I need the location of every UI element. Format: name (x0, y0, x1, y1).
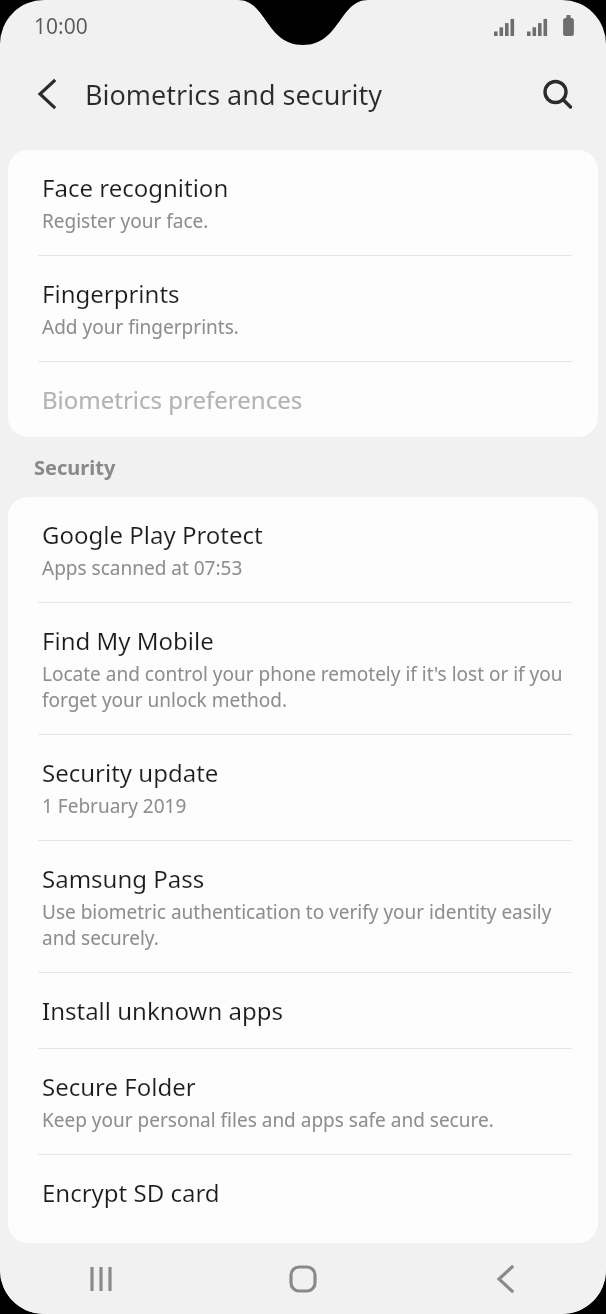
staticText: Samsung Pass (42, 862, 205, 895)
staticText: Secure Folder (42, 1070, 196, 1103)
button[interactable]: Encrypt SD card (8, 1155, 598, 1230)
staticText: Use biometric authentication to verify y… (42, 899, 572, 951)
button[interactable]: Samsung Pass (8, 841, 598, 973)
button[interactable]: Face recognition (8, 150, 598, 256)
staticText: 10:00 (34, 12, 88, 41)
button[interactable]: Find My Mobile (8, 603, 598, 735)
staticText: Install unknown apps (42, 994, 283, 1027)
staticText: Google Play Protect (42, 518, 263, 551)
button[interactable]: Google Play Protect (8, 497, 598, 603)
staticText: Security update (42, 756, 219, 789)
staticText: Security (34, 454, 116, 481)
staticText: Fingerprints (42, 277, 180, 310)
staticText: Encrypt SD card (42, 1176, 220, 1209)
staticText: Register your face. (42, 208, 209, 234)
staticText: Biometrics and security (85, 76, 382, 113)
staticText: Locate and control your phone remotely i… (42, 661, 572, 713)
button[interactable]: Back (404, 1243, 606, 1314)
staticText: Keep your personal files and apps safe a… (42, 1107, 494, 1133)
staticText: Find My Mobile (42, 624, 214, 657)
button[interactable]: Security update (8, 735, 598, 841)
button[interactable]: Biometrics preferences (8, 362, 598, 437)
button[interactable]: Search (532, 69, 582, 119)
staticText: Apps scanned at 07:53 (42, 555, 243, 581)
staticText: Add your fingerprints. (42, 314, 239, 340)
staticText: Biometrics preferences (42, 383, 303, 416)
button[interactable]: Back (22, 69, 72, 119)
button[interactable]: Fingerprints (8, 256, 598, 362)
button[interactable]: Recent apps (0, 1243, 202, 1314)
button[interactable]: Install unknown apps (8, 973, 598, 1049)
staticText: 1 February 2019 (42, 793, 187, 819)
button[interactable]: Secure Folder (8, 1049, 598, 1155)
button[interactable]: Home (202, 1243, 404, 1314)
staticText: Face recognition (42, 171, 229, 204)
